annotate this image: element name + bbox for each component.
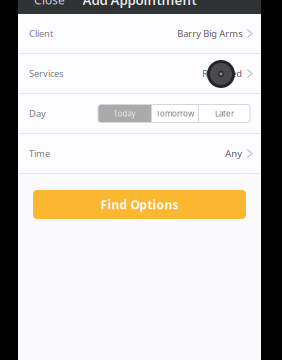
staticText: Time [29,147,50,160]
staticText: Client [29,27,53,40]
button[interactable]: Services [18,54,261,94]
button[interactable]: Client [18,14,261,54]
staticText: Add Appointment [82,0,196,9]
staticText: Required [202,67,242,80]
staticText: Later [215,108,234,119]
button[interactable]: Tomorrow [152,104,198,122]
staticText: Services [29,67,63,80]
staticText: Tomorrow [156,108,194,119]
staticText: Any [225,147,242,160]
button[interactable]: Day [18,94,261,134]
button[interactable]: Later [199,104,250,122]
staticText: Barry Big Arms [177,27,242,40]
staticText: Today [113,108,135,119]
staticText: Find Options [100,196,178,212]
staticText: Day [29,107,46,120]
button[interactable]: Time [18,134,261,174]
button[interactable]: Find Options [33,190,246,219]
staticText: Close [34,0,65,8]
button[interactable]: Close [34,0,65,8]
button[interactable]: Today [98,104,151,122]
